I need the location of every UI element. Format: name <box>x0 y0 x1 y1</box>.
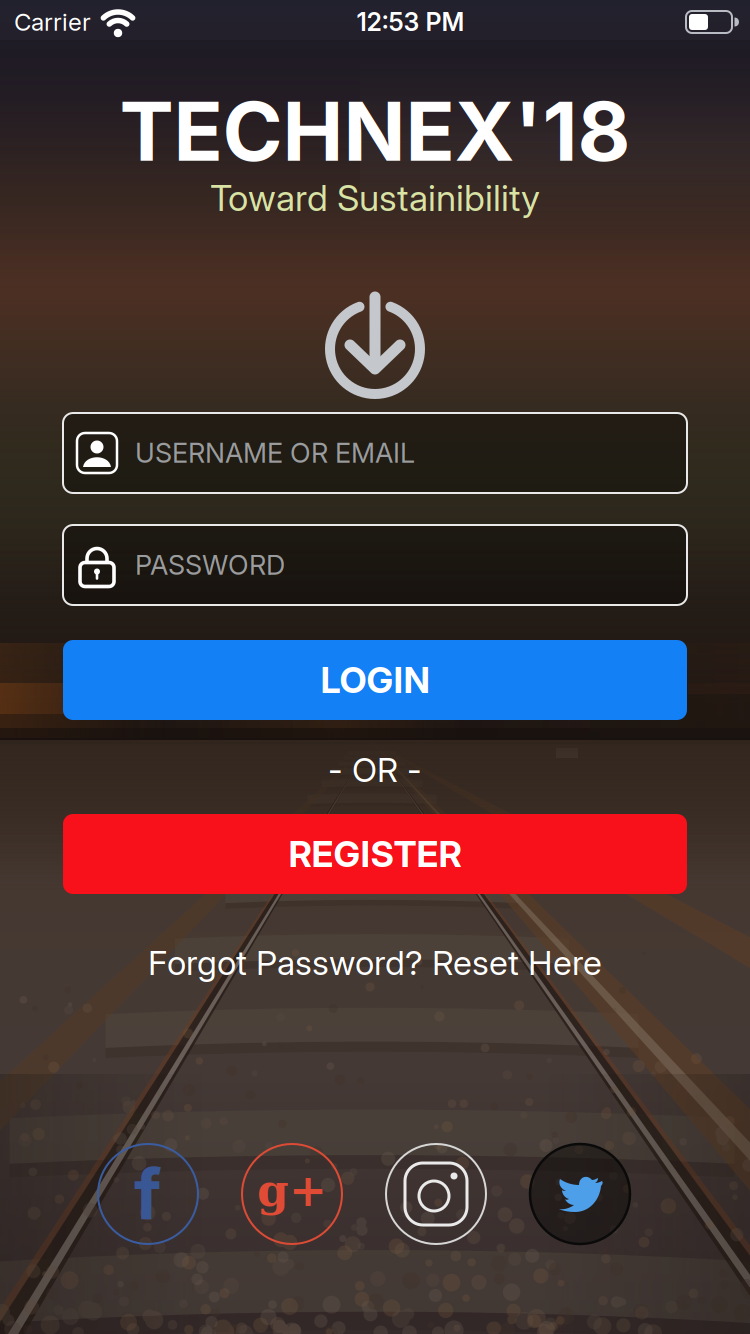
staticText: PASSWORD <box>135 549 285 581</box>
staticText: TECHNEX'18 <box>119 82 630 180</box>
staticText: - OR - <box>328 750 422 790</box>
button[interactable]: PASSWORD <box>63 525 687 605</box>
staticText: USERNAME OR EMAIL <box>135 437 415 469</box>
staticText: Toward Sustainibility <box>210 176 540 220</box>
staticText: g+ <box>257 1163 327 1217</box>
button[interactable]: USERNAME OR EMAIL <box>63 413 687 493</box>
staticText: LOGIN <box>320 658 429 702</box>
button[interactable]: Sign in with Google <box>242 1144 342 1244</box>
button[interactable]: LOGIN <box>63 640 687 720</box>
button[interactable]: Sign in with Twitter <box>530 1144 630 1244</box>
staticText: f <box>134 1152 162 1236</box>
staticText: Carrier <box>14 7 91 36</box>
button[interactable]: Sign in with Facebook <box>98 1144 198 1244</box>
button[interactable]: Sign in with Instagram <box>386 1144 486 1244</box>
button[interactable]: Forgot Password? Reset Here <box>148 942 602 983</box>
staticText: 12:53 PM <box>356 7 464 37</box>
button[interactable]: REGISTER <box>63 814 687 894</box>
staticText: REGISTER <box>288 832 461 876</box>
staticText: Forgot Password? Reset Here <box>148 942 602 983</box>
